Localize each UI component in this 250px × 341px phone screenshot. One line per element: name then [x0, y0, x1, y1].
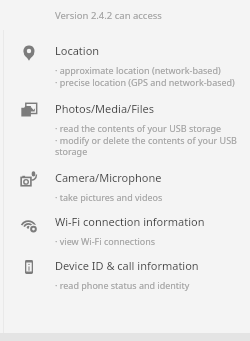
button[interactable]: Wi-Fi connection information — [0, 214, 250, 247]
button[interactable]: Location — [0, 43, 250, 88]
staticText: Photos/Media/Files — [55, 101, 154, 116]
other: Wi-Fi connection information — [21, 216, 55, 232]
button[interactable]: Camera and Microphone — [0, 170, 250, 203]
staticText: · view Wi-Fi connections — [55, 235, 156, 247]
staticText: Device ID & call information — [55, 258, 199, 273]
staticText: Camera/Microphone — [55, 170, 162, 185]
staticText: · precise location (GPS and network-base… — [55, 76, 235, 88]
staticText: · read the contents of your USB storage — [55, 122, 222, 134]
staticText: Location — [55, 43, 100, 58]
staticText: · read phone status and identity — [55, 279, 190, 291]
button[interactable]: Photos, Media and Files — [0, 101, 250, 158]
staticText: Version 2.4.2 can access — [55, 9, 162, 22]
staticText: · take pictures and videos — [55, 191, 163, 203]
other: Device ID and call information — [21, 259, 55, 275]
other: Location — [21, 45, 55, 61]
staticText: Wi-Fi connection information — [55, 214, 205, 229]
staticText: · approximate location (network-based) — [55, 64, 221, 76]
button[interactable]: Device ID and call information — [0, 258, 250, 291]
other: Camera and Microphone — [21, 171, 55, 187]
staticText: · modify or delete the contents of your … — [55, 134, 244, 158]
other: Photos, Media and Files — [21, 102, 55, 118]
